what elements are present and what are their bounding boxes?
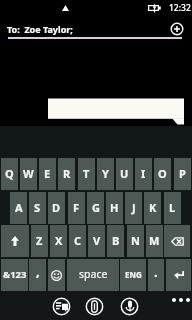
button[interactable]: Z [31,225,48,257]
button[interactable]: More options [172,298,190,302]
button[interactable]: C [69,225,86,257]
button[interactable]: J [125,192,142,224]
button[interactable]: Add recipient [170,22,184,36]
button[interactable]: Shift [1,225,29,257]
staticText: D [52,200,61,215]
staticText: M [149,233,160,248]
staticText: U [120,166,129,181]
staticText: &123 [3,268,27,281]
button[interactable]: H [106,192,123,224]
button[interactable]: space [67,259,119,291]
button[interactable]: O [154,158,171,190]
button[interactable]: L [164,192,181,224]
button[interactable]: G [87,192,104,224]
staticText: E [44,166,51,181]
staticText: , [36,262,40,280]
button[interactable]: I [135,158,152,190]
staticText: L [169,200,176,215]
button[interactable]: T [78,158,95,190]
button[interactable]: M [146,225,163,257]
staticText: To: Zoe Taylor; [7,23,73,35]
staticText: A [15,200,23,215]
staticText: X [55,233,63,248]
button[interactable]: F [68,192,85,224]
button[interactable]: U [116,158,133,190]
staticText: space [79,267,108,281]
button[interactable]: &123 [1,259,28,291]
staticText: I [141,166,146,181]
staticText: . [154,263,158,281]
staticText: H [110,200,119,215]
staticText: P [179,166,186,181]
button[interactable]: Enter [166,259,191,291]
button[interactable]: Q [1,158,18,190]
staticText: O [158,166,167,181]
button[interactable]: ENG [120,259,146,291]
button[interactable]: A [10,192,27,224]
button[interactable]: , [29,259,46,291]
staticText: T [83,166,90,181]
button[interactable]: Backspace [164,225,190,257]
button[interactable]: R [58,158,75,190]
staticText: N [131,233,140,248]
staticText: 12:32 [169,2,191,14]
staticText: W [23,166,34,181]
button[interactable]: D [48,192,65,224]
staticText: Y [102,166,109,181]
button[interactable]: Voice [120,297,139,316]
button[interactable]: X [50,225,67,257]
staticText: Q [5,166,14,181]
button[interactable]: Y [97,158,114,190]
button[interactable]: B [107,225,124,257]
button[interactable]: P [174,158,191,190]
staticText: V [93,233,101,248]
staticText: C [74,233,82,248]
button[interactable]: S [29,192,46,224]
button[interactable]: E [39,158,56,190]
button[interactable]: V [88,225,105,257]
staticText: K [149,200,157,215]
staticText: ENG [125,269,142,280]
staticText: S [34,200,41,215]
button[interactable]: W [20,158,37,190]
button[interactable]: New message [52,297,71,316]
staticText: R [63,166,71,181]
button[interactable]: . [148,259,164,291]
button[interactable]: N [127,225,144,257]
button[interactable]: K [144,192,161,224]
staticText: Z [36,233,43,248]
button[interactable]: Emoji [48,259,65,291]
staticText: G [92,200,100,215]
staticText: B [112,233,120,248]
staticText: J [132,200,136,215]
button[interactable]: Attach [85,297,104,316]
staticText: F [73,200,80,215]
